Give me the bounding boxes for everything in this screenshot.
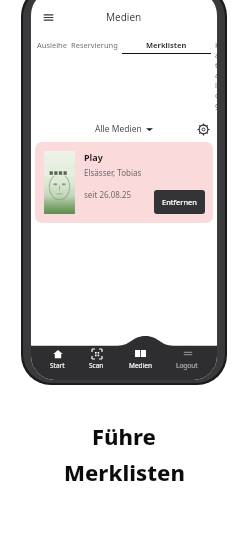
staticText: Play — [84, 151, 103, 163]
staticText: Merklisten — [64, 457, 185, 487]
staticText: Logout — [176, 361, 198, 370]
button[interactable]: Logout — [171, 347, 203, 371]
staticText: Elsässer, Tobias — [84, 167, 142, 178]
button[interactable]: Start — [45, 347, 70, 371]
staticText: Merklisten — [146, 40, 187, 50]
button[interactable]: Menü — [37, 6, 59, 28]
button[interactable]: Alle Medien — [91, 121, 157, 137]
staticText: Start — [50, 361, 65, 370]
staticText: Medien — [106, 10, 142, 24]
button[interactable]: Ausleihe — [35, 39, 69, 51]
staticText: seit 26.08.25 — [84, 189, 132, 200]
button[interactable]: Entfernen — [154, 190, 205, 214]
staticText: Ausleihe — [37, 40, 67, 50]
button[interactable]: Play — [35, 142, 213, 223]
button[interactable]: Medien — [124, 347, 157, 371]
staticText: Alle Medien — [95, 123, 142, 135]
staticText: Scan — [89, 361, 104, 370]
button[interactable]: Scan — [84, 347, 109, 371]
staticText: Reservierung — [71, 40, 118, 50]
button[interactable]: Merklisten — [120, 39, 213, 55]
button[interactable]: Einstellungen — [195, 121, 211, 137]
staticText: Entfernen — [162, 197, 197, 207]
button[interactable]: Reservierung — [69, 39, 120, 51]
staticText: Führe — [92, 421, 156, 451]
staticText: Medien — [129, 361, 152, 370]
